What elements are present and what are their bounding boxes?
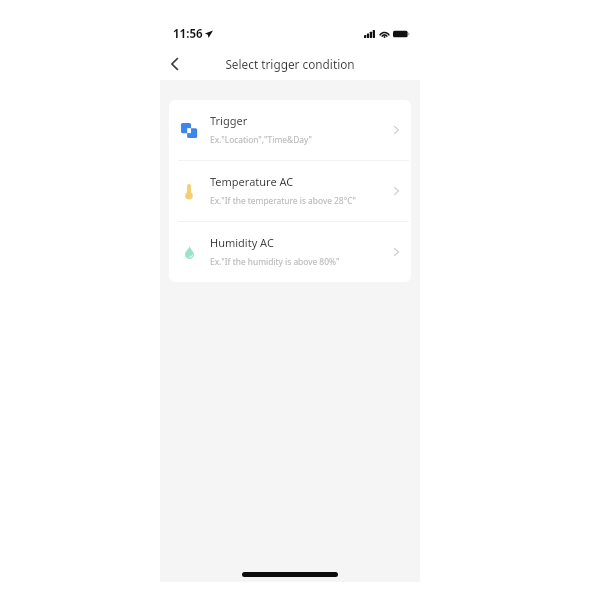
staticText: Ex."If the humidity is above 80%"	[210, 256, 340, 267]
staticText: Select trigger condition	[225, 56, 355, 72]
staticText: Trigger	[210, 113, 248, 128]
staticText: Temperature AC	[210, 174, 294, 189]
staticText: Ex."Location","Time&Day"	[210, 134, 313, 145]
button[interactable]: Temperature AC	[169, 161, 411, 221]
button[interactable]: Humidity AC	[169, 222, 411, 282]
staticText: Ex."If the temperature is above 28°C"	[210, 195, 356, 206]
button[interactable]: Trigger	[169, 100, 411, 160]
staticText: Humidity AC	[210, 235, 274, 250]
button[interactable]: Back	[161, 51, 187, 77]
staticText: 11:56	[173, 26, 203, 42]
